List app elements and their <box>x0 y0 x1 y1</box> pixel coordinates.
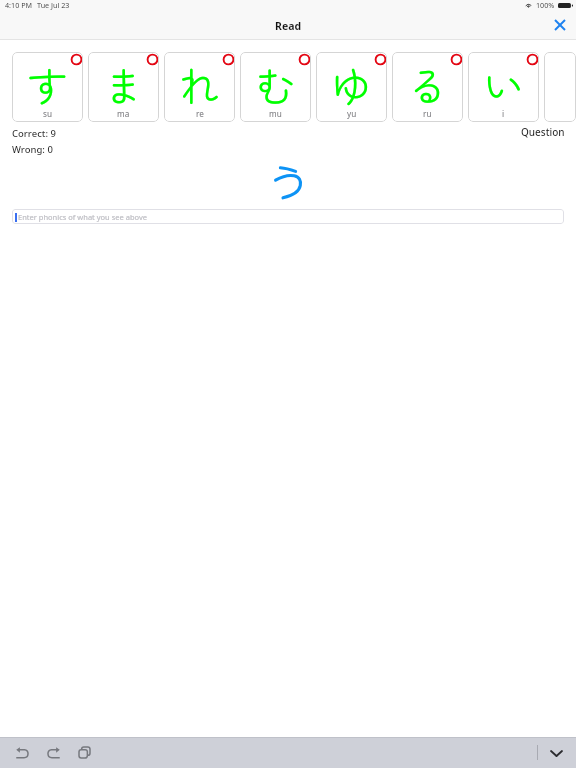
staticText: い <box>483 54 524 113</box>
staticText: Correct: 9 <box>12 127 56 140</box>
staticText: su <box>43 108 52 119</box>
staticText: Read <box>275 19 302 33</box>
staticText: Wrong: 0 <box>12 143 53 156</box>
button[interactable]: れ <box>164 52 235 122</box>
staticText: Tue Jul 23 <box>37 0 70 10</box>
staticText: i <box>502 108 505 119</box>
staticText: れ <box>179 54 220 113</box>
button[interactable]: Redo <box>39 738 68 767</box>
button[interactable]: す <box>12 52 83 122</box>
staticText: 4:10 PM <box>5 0 32 10</box>
button[interactable]: Undo <box>8 738 37 767</box>
staticText: る <box>407 54 448 113</box>
staticText: む <box>255 54 296 113</box>
staticText: ru <box>423 108 432 119</box>
button[interactable]: ゆ <box>316 52 387 122</box>
staticText: yu <box>347 108 357 119</box>
button[interactable]: い <box>468 52 539 122</box>
button[interactable]: ま <box>88 52 159 122</box>
button[interactable]: る <box>392 52 463 122</box>
button[interactable]: Paste <box>70 738 99 767</box>
button[interactable]: む <box>240 52 311 122</box>
button[interactable]: Close <box>549 14 571 36</box>
staticText: 100% <box>536 0 555 10</box>
staticText: ゆ <box>331 54 372 113</box>
staticText: Question <box>521 125 565 139</box>
button[interactable] <box>544 52 576 122</box>
button[interactable]: Hide keyboard <box>544 741 568 765</box>
staticText: Enter phonics of what you see above <box>18 212 147 222</box>
staticText: mu <box>269 108 282 119</box>
staticText: す <box>27 54 68 113</box>
staticText: ma <box>117 108 130 119</box>
button[interactable]: Enter phonics of what you see above <box>12 209 564 224</box>
staticText: ま <box>103 54 144 113</box>
staticText: re <box>196 108 204 119</box>
